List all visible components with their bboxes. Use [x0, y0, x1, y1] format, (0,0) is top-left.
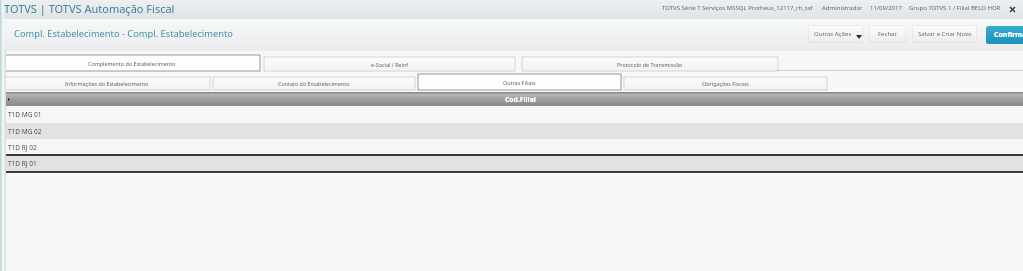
staticText: Cod.Filial	[505, 95, 536, 104]
staticText: T1D RJ 02	[8, 143, 37, 152]
staticText: Administrador	[822, 4, 863, 12]
button[interactable]: T1D MG 01	[5, 106, 1023, 123]
button[interactable]: Protocolo de Transmissão	[522, 57, 778, 71]
staticText: Grupo TOTVS 1 / Filial BELO HOR	[909, 4, 1001, 12]
button[interactable]: Fechar	[869, 25, 906, 43]
button[interactable]: Confirmar	[986, 26, 1023, 44]
staticText: Obrigações Fiscais	[702, 80, 749, 87]
staticText: Confirmar	[994, 30, 1023, 40]
staticText: Protocolo de Transmissão	[617, 61, 683, 68]
button[interactable]: Outras Ações	[808, 25, 863, 43]
button[interactable]: Fechar	[1005, 1, 1020, 16]
button[interactable]: T1D RJ 02	[5, 139, 1023, 155]
staticText: T1D MG 02	[8, 127, 42, 136]
button[interactable]: Informações do Estabelecimento	[4, 77, 210, 90]
staticText: Salvar e Criar Novo	[918, 30, 972, 38]
button[interactable]: Outras Filiais	[418, 74, 621, 90]
staticText: Outras Ações	[814, 30, 852, 38]
staticText: e-Social / Reinf	[371, 61, 409, 68]
staticText: Contato do Estabelecimento	[278, 80, 350, 87]
button[interactable]: Contato do Estabelecimento	[213, 77, 415, 90]
staticText: Compl. Estabelecimento - Compl. Estabele…	[14, 27, 233, 40]
button[interactable]: Obrigações Fiscais	[624, 77, 827, 90]
button[interactable]: T1D RJ 01	[5, 155, 1023, 172]
staticText: Complemento do Estabelecimento	[88, 60, 176, 67]
staticText: 11/09/2017	[870, 4, 902, 12]
staticText: TOTVS Série T Serviços MSSQL Protheus_12…	[662, 4, 813, 12]
button[interactable]: Complemento do Estabelecimento	[4, 55, 260, 71]
staticText: Informações do Estabelecimento	[65, 80, 149, 87]
staticText: Fechar	[878, 30, 897, 38]
staticText: Outras Filiais	[503, 79, 536, 86]
button[interactable]: e-Social / Reinf	[264, 57, 515, 71]
button[interactable]: Salvar e Criar Novo	[912, 25, 977, 43]
staticText: T1D RJ 01	[8, 159, 37, 168]
button[interactable]: T1D MG 02	[5, 123, 1023, 139]
staticText: T1D MG 01	[8, 110, 42, 119]
staticText: TOTVS | TOTVS Automação Fiscal	[4, 1, 175, 16]
